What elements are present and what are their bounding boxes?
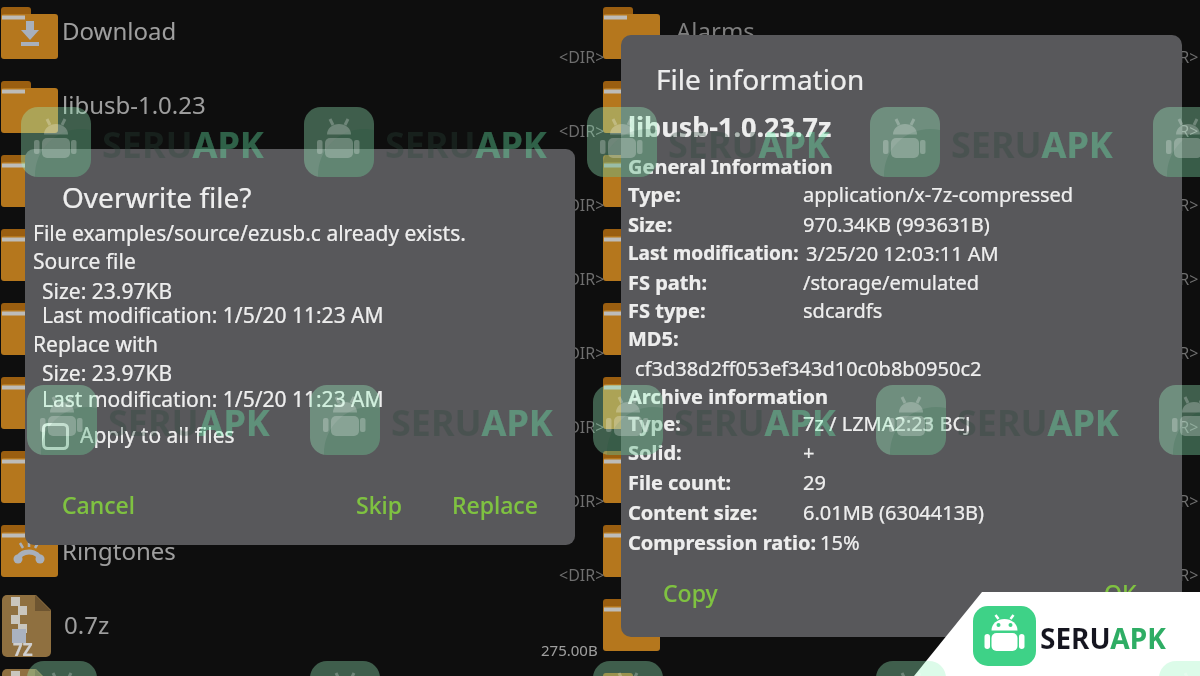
staticText: Download [62, 14, 177, 47]
staticText: 275.00B [541, 640, 598, 660]
staticText: SERUAPK [674, 398, 836, 447]
staticText: application/x-7z-compressed [803, 181, 1074, 208]
staticText: MD5: [628, 325, 679, 352]
staticText: Last modification: [628, 240, 799, 266]
staticText: libusb-1.0.23.7z [628, 108, 832, 145]
staticText: 3/25/20 12:03:11 AM [806, 240, 999, 267]
button[interactable]: OK [1096, 573, 1156, 611]
staticText: SERUAPK [668, 120, 830, 169]
staticText: 0.7z [64, 608, 110, 641]
staticText: libusb-1.0.23 [62, 88, 206, 121]
staticText: 970.34KB (993631B) [803, 211, 990, 238]
staticText: Content size: [628, 499, 758, 526]
staticText: Alarms [676, 14, 755, 47]
staticText: SERUAPK [1040, 619, 1166, 657]
button[interactable]: Replace [444, 485, 554, 523]
staticText: Skip [356, 489, 402, 520]
staticText: FS type: [628, 297, 706, 324]
staticText: Size: 23.97KB [42, 277, 173, 306]
staticText: Last modification: 1/5/20 11:23 AM [42, 385, 384, 414]
staticText: Archive information [628, 383, 829, 410]
staticText: <DIR> [1153, 120, 1199, 142]
staticText: Copy [663, 577, 718, 608]
staticText: <DIR> [559, 194, 605, 216]
staticText: <DIR> [1153, 268, 1199, 290]
staticText: File examples/source/ezusb.c already exi… [33, 219, 466, 248]
staticText: SERUAPK [102, 120, 264, 169]
staticText: <DIR> [1153, 564, 1199, 586]
staticText: Overwrite file? [62, 178, 252, 216]
staticText: Type: [628, 181, 681, 208]
staticText: File count: [628, 469, 732, 496]
button[interactable]: Skip [348, 485, 418, 523]
staticText: 7z / LZMA2:23 BCJ [803, 410, 971, 437]
staticText: SERUAPK [385, 120, 547, 169]
staticText: Size: [628, 211, 673, 238]
staticText: <DIR> [1153, 194, 1199, 216]
staticText: <DIR> [559, 342, 605, 364]
button[interactable]: Cancel [54, 485, 154, 523]
staticText: SERUAPK [957, 398, 1119, 447]
staticText: sdcardfs [803, 297, 883, 324]
staticText: <DIR> [1153, 416, 1199, 438]
staticText: Ringtones [62, 534, 176, 567]
staticText: <DIR> [1153, 638, 1199, 660]
staticText: cf3d38d2ff053ef343d10c0b8b0950c2 [635, 355, 982, 382]
staticText: <DIR> [559, 416, 605, 438]
staticText: <DIR> [559, 120, 605, 142]
button[interactable] [38, 417, 238, 457]
staticText: <DIR> [559, 490, 605, 512]
staticText: 7Z [13, 638, 33, 661]
staticText: <DIR> [1153, 342, 1199, 364]
staticText: 15% [820, 529, 860, 556]
staticText: Last modification: 1/5/20 11:23 AM [42, 301, 384, 330]
staticText: Source file [33, 247, 136, 276]
staticText: SERUAPK [391, 398, 553, 447]
staticText: Solid: [628, 439, 682, 466]
staticText: <DIR> [1153, 46, 1199, 68]
button[interactable]: Copy [655, 573, 740, 611]
staticText: <DIR> [559, 564, 605, 586]
staticText: File information [656, 60, 865, 98]
staticText: Replace [452, 489, 538, 520]
staticText: <DIR> [559, 46, 605, 68]
staticText: <DIR> [559, 268, 605, 290]
staticText: Cancel [62, 489, 135, 520]
staticText: Type: [628, 410, 681, 437]
staticText: SERUAPK [951, 120, 1113, 169]
staticText: Compression ratio: [628, 529, 817, 556]
staticText: FS path: [628, 269, 708, 296]
staticText: + [803, 439, 815, 466]
staticText: General Information [628, 153, 833, 180]
staticText: /storage/emulated [803, 269, 979, 296]
staticText: SERUAPK [108, 398, 270, 447]
staticText: <DIR> [1153, 490, 1199, 512]
staticText: Replace with [33, 330, 158, 359]
staticText: 29 [803, 469, 826, 496]
staticText: Size: 23.97KB [42, 359, 173, 388]
staticText: 6.01MB (6304413B) [803, 499, 985, 526]
staticText: OK [1104, 577, 1137, 608]
staticText: Apply to all files [80, 421, 235, 450]
